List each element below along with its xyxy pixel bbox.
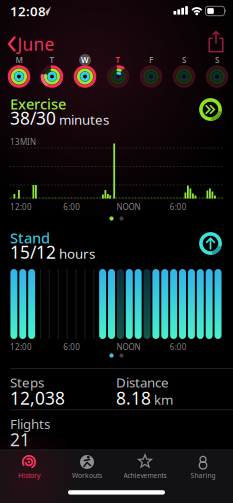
staticText: 12:08 <box>10 2 46 20</box>
staticText: June <box>17 32 54 55</box>
staticText: 6:00 <box>63 201 80 212</box>
staticText: T <box>49 55 54 65</box>
staticText: Stand <box>10 228 50 247</box>
button[interactable]: History <box>0 452 58 498</box>
button[interactable]: Day M <box>2 51 35 91</box>
button[interactable]: Exercise details <box>196 95 224 123</box>
button[interactable]: Back <box>0 30 62 58</box>
button[interactable]: Day W <box>68 51 101 91</box>
button[interactable]: Day S <box>167 51 200 91</box>
staticText: Achievements <box>123 471 166 480</box>
button[interactable]: Day T <box>35 51 68 91</box>
staticText: 6:00 <box>63 341 80 352</box>
button[interactable]: Sharing <box>174 452 232 498</box>
staticText: Sharing <box>190 471 215 480</box>
staticText: T <box>115 55 120 65</box>
staticText: NOON <box>116 341 140 352</box>
staticText: minutes <box>59 111 109 128</box>
staticText: Steps <box>10 373 44 391</box>
button[interactable]: Day F <box>134 51 167 91</box>
staticText: S <box>215 55 219 65</box>
staticText: km <box>154 391 173 408</box>
button[interactable]: Share <box>203 29 229 55</box>
staticText: 8.18 <box>116 386 151 409</box>
staticText: Flights <box>10 415 50 433</box>
staticText: F <box>149 55 153 65</box>
button[interactable]: Achievements <box>116 452 174 498</box>
staticText: M <box>15 55 22 65</box>
staticText: Distance <box>116 373 169 391</box>
staticText: History <box>18 471 40 480</box>
staticText: S <box>182 55 186 65</box>
staticText: 12:00 <box>10 341 32 352</box>
button[interactable]: Stand details <box>196 229 224 257</box>
staticText: NOON <box>116 201 140 212</box>
button[interactable]: Workouts <box>58 452 116 498</box>
button[interactable]: Day S <box>200 51 233 91</box>
staticText: Exercise <box>10 94 66 113</box>
staticText: 38/30 <box>10 106 56 129</box>
staticText: 15/12 <box>10 240 56 263</box>
staticText: 21 <box>10 428 30 451</box>
staticText: hours <box>59 245 95 262</box>
staticText: W <box>81 55 89 65</box>
staticText: 6:00 <box>170 201 187 212</box>
button[interactable]: Day T <box>101 51 134 91</box>
staticText: 12:00 <box>10 201 32 212</box>
staticText: 6:00 <box>170 341 187 352</box>
staticText: 13MIN <box>10 136 36 147</box>
staticText: 12,038 <box>10 386 65 409</box>
staticText: Workouts <box>72 471 102 480</box>
